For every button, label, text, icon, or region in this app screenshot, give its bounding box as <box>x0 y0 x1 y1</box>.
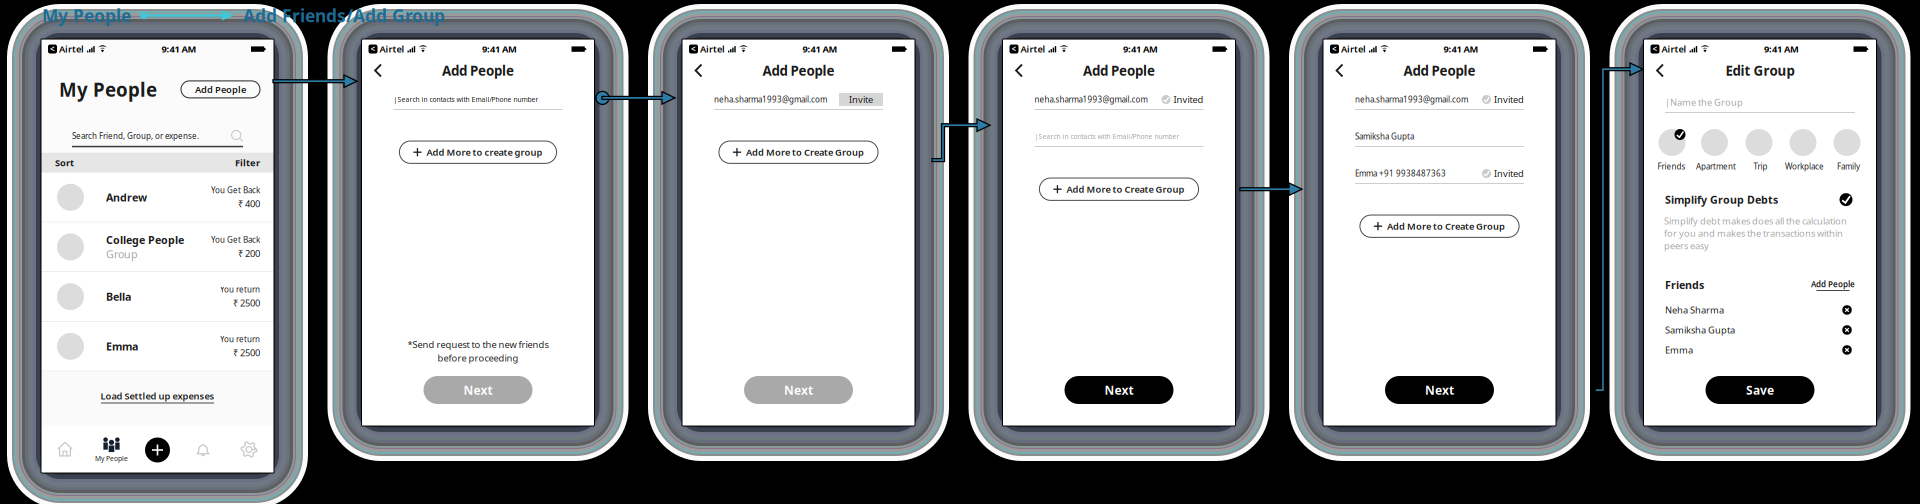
button[interactable]: Home <box>42 427 88 473</box>
button[interactable]: Back <box>1002 57 1035 83</box>
staticText: Emma <box>106 339 138 353</box>
staticText: Family <box>1837 161 1860 172</box>
staticText: College People <box>106 233 184 247</box>
staticText: You Get Back <box>211 185 260 195</box>
staticText: *Send request to the new friends <box>407 338 548 351</box>
button[interactable]: Settings <box>226 427 272 473</box>
button[interactable]: Friends <box>1656 129 1686 172</box>
staticText: Sort <box>55 156 74 169</box>
staticText: |Search in contacts with Email/Phone num… <box>1034 132 1179 141</box>
button[interactable]: Add <box>134 427 180 473</box>
staticText: < <box>1332 44 1337 54</box>
button[interactable]: Sort <box>41 152 74 173</box>
button[interactable]: My People <box>88 427 134 473</box>
staticText: Add People <box>195 83 246 96</box>
staticText: ₹ 2500 <box>233 297 260 309</box>
button[interactable]: Back <box>682 57 715 83</box>
staticText: < <box>50 44 55 54</box>
button[interactable]: Remove Neha Sharma <box>1839 302 1855 318</box>
staticText: 9:41 AM <box>482 43 517 55</box>
staticText: Trip <box>1753 161 1767 172</box>
staticText: < <box>370 44 375 54</box>
staticText: Samiksha Gupta <box>1355 131 1414 142</box>
button[interactable]: Next <box>423 376 532 404</box>
button[interactable]: Remove Samiksha Gupta <box>1839 322 1855 338</box>
button[interactable]: Add More to Create Group <box>719 141 878 163</box>
staticText: Bella <box>106 290 131 304</box>
staticText: Next <box>463 382 492 398</box>
staticText: Workplace <box>1785 161 1824 172</box>
staticText: Add More to create group <box>427 146 543 158</box>
staticText: Airtel <box>379 43 404 55</box>
staticText: Add More to Create Group <box>746 146 864 158</box>
staticText: |Name the Group <box>1665 96 1743 108</box>
button[interactable]: Invite <box>839 93 883 106</box>
staticText: ₹ 2500 <box>233 346 260 359</box>
staticText: Search Friend, Group, or expense. <box>72 130 199 141</box>
staticText: Emma +91 9938487363 <box>1355 168 1446 179</box>
button[interactable]: Remove Emma <box>1839 342 1855 358</box>
staticText: Next <box>784 382 813 398</box>
staticText: You Get Back <box>211 234 260 245</box>
staticText: 9:41 AM <box>1764 43 1799 55</box>
staticText: Simplify debt makes does all the calcula… <box>1664 215 1847 252</box>
staticText: Apartment <box>1696 161 1736 172</box>
staticText: You return <box>220 334 260 344</box>
staticText: You return <box>220 284 260 295</box>
button[interactable]: College People <box>41 222 274 271</box>
staticText: Add People <box>1083 62 1155 79</box>
staticText: before proceeding <box>437 352 518 364</box>
staticText: Filter <box>235 156 260 169</box>
staticText: Airtel <box>1661 43 1686 55</box>
button[interactable]: Notifications <box>180 427 226 473</box>
button[interactable]: Next <box>1385 376 1494 404</box>
button[interactable]: Simplify Group Debts <box>1837 191 1855 209</box>
staticText: < <box>1011 44 1016 54</box>
button[interactable]: Add More to Create Group <box>1039 178 1199 200</box>
button[interactable]: Apartment <box>1696 129 1736 172</box>
button[interactable]: Add People <box>1811 279 1855 291</box>
button[interactable]: Andrew <box>41 173 274 222</box>
staticText: Invited <box>1494 167 1524 180</box>
button[interactable]: Add More to create group <box>399 141 557 163</box>
button[interactable]: Add More to Create Group <box>1360 215 1519 237</box>
staticText: Add More to Create Group <box>1067 183 1185 195</box>
staticText: Emma <box>1665 344 1693 356</box>
staticText: Group <box>106 247 138 261</box>
button[interactable]: Back <box>1323 57 1356 83</box>
button[interactable]: Save <box>1705 376 1814 404</box>
button[interactable]: Add People <box>181 81 260 98</box>
button[interactable]: Bella <box>41 272 274 321</box>
staticText: Edit Group <box>1725 62 1794 79</box>
staticText: neha.sharma1993@gmail.com <box>1034 94 1147 105</box>
staticText: Add People <box>1403 62 1475 79</box>
staticText: Samiksha Gupta <box>1665 324 1735 336</box>
staticText: Simplify Group Debts <box>1665 192 1778 207</box>
button[interactable]: Filter <box>235 152 274 173</box>
staticText: ₹ 200 <box>238 247 260 259</box>
staticText: Add People <box>442 62 514 79</box>
staticText: |Search in contacts with Email/Phone num… <box>393 95 538 104</box>
button[interactable]: Back <box>1643 57 1676 83</box>
staticText: neha.sharma1993@gmail.com <box>1355 94 1468 105</box>
staticText: Neha Sharma <box>1665 304 1724 316</box>
button[interactable]: Emma <box>41 322 274 371</box>
staticText: Andrew <box>106 190 147 204</box>
staticText: Add People <box>1811 279 1855 289</box>
button[interactable]: Next <box>1064 376 1173 404</box>
button[interactable]: Family <box>1833 129 1863 172</box>
staticText: Save <box>1746 382 1774 398</box>
staticText: My People <box>95 454 128 463</box>
button[interactable]: Workplace <box>1785 129 1824 172</box>
button[interactable]: Load Settled up expenses <box>41 371 274 421</box>
button[interactable]: Next <box>744 376 853 404</box>
staticText: neha.sharma1993@gmail.com <box>714 94 827 105</box>
staticText: Add Friends/Add Group <box>243 4 445 27</box>
staticText: 9:41 AM <box>1123 43 1158 55</box>
staticText: 9:41 AM <box>802 43 837 55</box>
staticText: Invited <box>1173 93 1203 106</box>
staticText: Add People <box>762 62 834 79</box>
staticText: 9:41 AM <box>1443 43 1478 55</box>
button[interactable]: Back <box>361 57 394 83</box>
button[interactable]: Trip <box>1745 129 1775 172</box>
